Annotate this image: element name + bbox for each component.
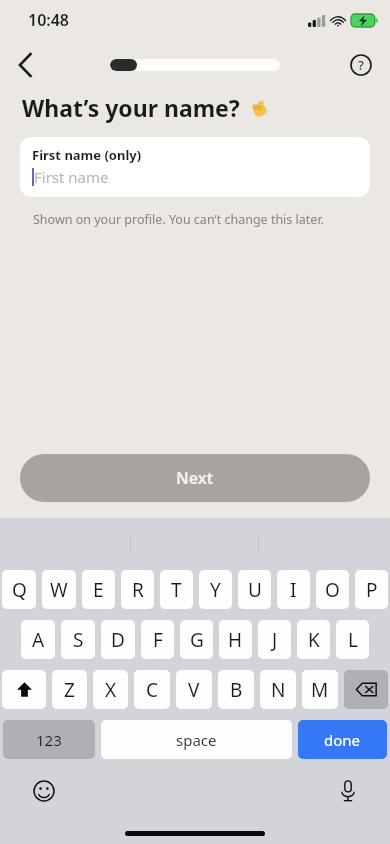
button[interactable]: P <box>355 570 388 609</box>
staticText: What’s your name? <box>22 92 240 123</box>
button[interactable]: W <box>42 570 76 609</box>
button[interactable]: B <box>218 670 254 709</box>
button[interactable]: T <box>160 570 193 609</box>
button[interactable]: done <box>298 720 387 759</box>
button[interactable]: Q <box>2 570 36 609</box>
button[interactable]: D <box>101 620 135 659</box>
staticText: T <box>171 577 182 603</box>
button[interactable]: E <box>82 570 115 609</box>
button[interactable]: X <box>93 670 128 709</box>
staticText: H <box>228 627 243 653</box>
button[interactable]: H <box>219 620 252 659</box>
button[interactable]: L <box>336 620 369 659</box>
staticText: W <box>50 577 68 603</box>
button[interactable]: G <box>180 620 213 659</box>
staticText: Q <box>12 577 27 603</box>
button[interactable]: Help <box>346 50 376 80</box>
staticText: P <box>366 577 378 603</box>
button[interactable]: Z <box>52 670 87 709</box>
staticText: ? <box>358 56 364 74</box>
staticText: F <box>153 627 163 653</box>
staticText: First name <box>34 167 109 187</box>
staticText: B <box>230 677 243 703</box>
button[interactable]: space <box>101 720 292 759</box>
staticText: S <box>73 627 84 653</box>
staticText: Y <box>210 577 221 603</box>
button[interactable]: Back <box>8 47 44 83</box>
button[interactable]: Emoji <box>28 775 60 807</box>
button[interactable]: R <box>121 570 154 609</box>
button[interactable]: Next <box>20 454 370 502</box>
button[interactable]: S <box>61 620 95 659</box>
staticText: O <box>325 577 340 603</box>
button[interactable]: K <box>297 620 330 659</box>
button[interactable]: First name (only) <box>20 137 370 197</box>
button[interactable]: 123 <box>3 720 95 759</box>
button[interactable]: V <box>176 670 212 709</box>
staticText: 123 <box>36 730 62 750</box>
staticText: A <box>32 627 45 653</box>
button[interactable]: Voice input <box>332 775 364 807</box>
button[interactable]: O <box>316 570 349 609</box>
button[interactable]: A <box>21 620 55 659</box>
staticText: R <box>132 577 144 603</box>
staticText: K <box>308 627 320 653</box>
staticText: Shown on your profile. You can’t change … <box>33 211 324 228</box>
button[interactable]: Shift <box>2 670 46 709</box>
staticText: Z <box>64 677 75 703</box>
staticText: J <box>272 627 278 653</box>
button[interactable]: U <box>238 570 271 609</box>
staticText: X <box>105 677 117 703</box>
button[interactable]: J <box>258 620 291 659</box>
staticText: 10:48 <box>28 9 70 31</box>
button[interactable]: N <box>260 670 296 709</box>
button[interactable]: M <box>302 670 338 709</box>
staticText: Next <box>176 467 214 489</box>
staticText: U <box>248 577 262 603</box>
button[interactable]: I <box>277 570 310 609</box>
staticText: done <box>324 730 361 750</box>
staticText: G <box>190 627 204 653</box>
staticText: D <box>111 627 125 653</box>
staticText: I <box>290 577 297 603</box>
staticText: First name (only) <box>32 146 142 164</box>
button[interactable]: F <box>141 620 174 659</box>
staticText: N <box>271 677 286 703</box>
button[interactable]: C <box>134 670 170 709</box>
staticText: C <box>146 677 159 703</box>
staticText: M <box>311 677 329 703</box>
button[interactable]: Y <box>199 570 232 609</box>
staticText: E <box>93 577 104 603</box>
button[interactable]: Backspace <box>344 670 388 709</box>
staticText: space <box>176 730 217 750</box>
staticText: V <box>188 677 200 703</box>
staticText: L <box>348 627 358 653</box>
